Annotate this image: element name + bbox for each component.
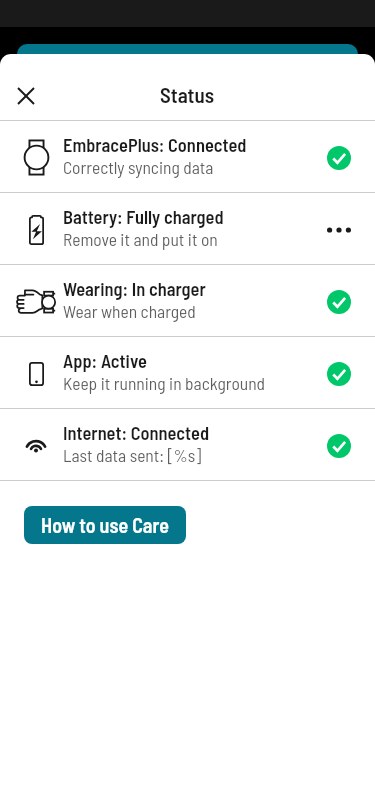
- staticText: Status: [160, 82, 215, 107]
- button[interactable]: How to use Care: [24, 506, 186, 544]
- staticText: Last data sent: [%s]: [63, 444, 202, 465]
- button[interactable]: Battery: Fully charged: [0, 193, 375, 264]
- staticText: EmbracePlus: Connected: [63, 134, 247, 156]
- staticText: Correctly syncing data: [63, 156, 214, 177]
- staticText: Battery: Fully charged: [63, 206, 224, 228]
- other: Status OK: [327, 146, 351, 170]
- staticText: Wearing: In charger: [63, 278, 206, 300]
- button[interactable]: EmbracePlus: Connected: [0, 121, 375, 192]
- button[interactable]: Internet: Connected: [0, 409, 375, 480]
- button[interactable]: More options: [317, 208, 361, 252]
- button[interactable]: Wearing: In charger: [0, 265, 375, 336]
- staticText: App: Active: [63, 350, 147, 372]
- staticText: Internet: Connected: [63, 422, 210, 444]
- button[interactable]: App: Active: [0, 337, 375, 408]
- button[interactable]: Close: [4, 74, 48, 118]
- other: Status OK: [327, 434, 351, 458]
- staticText: Remove it and put it on: [63, 228, 218, 249]
- other: Status OK: [327, 362, 351, 386]
- staticText: How to use Care: [41, 513, 169, 537]
- other: Status OK: [327, 290, 351, 314]
- staticText: Keep it running in background: [63, 372, 266, 393]
- staticText: Wear when charged: [63, 300, 196, 321]
